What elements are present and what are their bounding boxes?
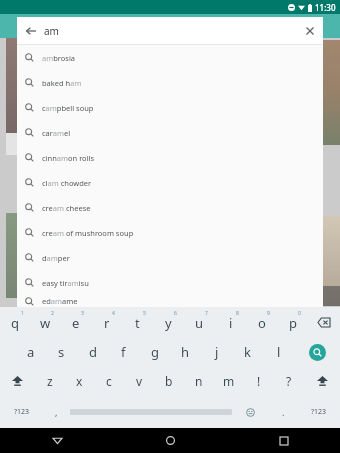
button[interactable]: easy tiramisu [17,270,323,295]
staticText: o [258,314,266,332]
staticText: i [229,314,233,332]
button[interactable]: s [46,338,77,366]
button[interactable]: i [215,307,246,338]
button[interactable]: clam chowder [17,170,323,195]
staticText: a [27,343,35,361]
button[interactable]: o [246,307,277,338]
button[interactable]: ! [244,366,274,396]
button[interactable]: v [124,366,154,396]
staticText: ! [257,373,261,389]
staticText: ambrosia [42,53,76,63]
staticText: 5 [143,310,146,317]
button[interactable]: Search [294,338,340,366]
button[interactable]: u [184,307,215,338]
button[interactable]: Home [114,428,227,453]
staticText: . [282,406,285,418]
staticText: 0 [298,310,301,317]
staticText: 9 [267,310,270,317]
staticText: baked ham [42,78,82,88]
button[interactable]: y [153,307,184,338]
staticText: clam chowder [42,178,92,188]
staticText: 6 [174,310,177,317]
staticText: r [104,314,110,332]
button[interactable]: f [108,338,139,366]
button[interactable]: Recent apps [227,428,340,453]
button[interactable]: cream cheese [17,195,323,220]
staticText: campbell soup [42,103,94,113]
button[interactable]: cinnamon rolls [17,145,323,170]
staticText: p [289,314,297,332]
button[interactable]: caramel [17,120,323,145]
button[interactable]: x [64,366,94,396]
staticText: y [165,314,172,332]
button[interactable]: q [0,307,30,338]
button[interactable]: Emoji [232,396,268,428]
staticText: cinnamon rolls [42,153,95,163]
button[interactable]: j [201,338,232,366]
button[interactable]: n [184,366,214,396]
staticText: 4 [112,310,115,317]
staticText: caramel [42,128,71,138]
button[interactable]: Backspace [308,307,340,338]
staticText: j [215,343,219,361]
staticText: easy tiramisu [42,278,89,288]
button[interactable]: Back [17,17,323,44]
button[interactable]: ambrosia [17,45,323,70]
button[interactable]: . [268,396,298,428]
button[interactable]: Clear [296,17,323,44]
button[interactable]: a [16,338,46,366]
staticText: damper [42,253,70,263]
staticText: n [195,373,203,389]
button[interactable]: Space [70,403,232,421]
staticText: 11:30 [315,2,336,13]
button[interactable]: e [60,307,91,338]
staticText: k [244,343,251,361]
staticText: v [136,373,143,389]
staticText: z [47,373,53,389]
staticText: ? [286,373,292,389]
staticText: g [151,343,159,361]
button[interactable]: ?123 [298,396,340,428]
button[interactable]: c [94,366,124,396]
button[interactable]: damper [17,245,323,270]
button[interactable]: k [232,338,263,366]
staticText: t [135,314,140,332]
button[interactable]: h [170,338,201,366]
button[interactable]: Back [0,428,114,453]
button[interactable]: z [35,366,64,396]
button[interactable]: p [277,307,308,338]
staticText: h [181,343,190,361]
button[interactable]: m [214,366,244,396]
button[interactable]: , [43,396,70,428]
staticText: am [44,24,296,38]
staticText: x [76,373,83,389]
staticText: q [11,314,19,332]
button[interactable]: t [122,307,153,338]
staticText: f [121,343,126,361]
button[interactable]: ?123 [0,396,43,428]
button[interactable]: cream of mushroom soup [17,220,323,245]
button[interactable]: campbell soup [17,95,323,120]
button[interactable]: ? [274,366,304,396]
staticText: b [165,373,173,389]
staticText: ?123 [311,407,327,417]
button[interactable]: r [91,307,122,338]
button[interactable]: baked ham [17,70,323,95]
staticText: 1 [21,310,24,317]
button[interactable]: Shift [304,366,340,396]
button[interactable]: d [77,338,108,366]
button[interactable]: w [30,307,60,338]
button[interactable]: Shift [0,366,35,396]
button[interactable]: g [139,338,170,366]
button[interactable]: Back [17,17,44,44]
staticText: ?123 [14,407,30,417]
staticText: m [223,373,235,389]
staticText: 7 [205,310,208,317]
button[interactable]: l [263,338,294,366]
button[interactable]: edamame [17,295,323,307]
staticText: u [195,314,204,332]
staticText: 2 [51,310,54,317]
staticText: e [72,314,80,332]
button[interactable]: b [154,366,184,396]
staticText: w [40,314,51,332]
